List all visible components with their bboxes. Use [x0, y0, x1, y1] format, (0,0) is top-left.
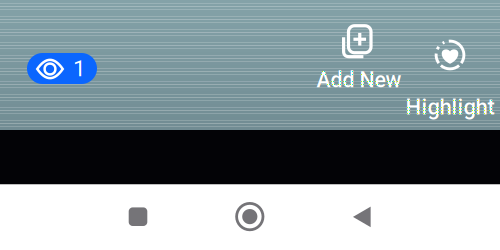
button[interactable]: Highlight — [398, 32, 500, 118]
button[interactable]: Home — [226, 193, 274, 241]
staticText: 1 — [73, 55, 86, 82]
staticText: Add New — [316, 67, 401, 92]
button[interactable]: Add New — [310, 5, 406, 77]
button[interactable]: Back — [338, 193, 386, 241]
staticText: Highlight — [405, 94, 494, 120]
button[interactable]: Recents — [114, 193, 162, 241]
button[interactable]: 1 view — [27, 53, 97, 84]
